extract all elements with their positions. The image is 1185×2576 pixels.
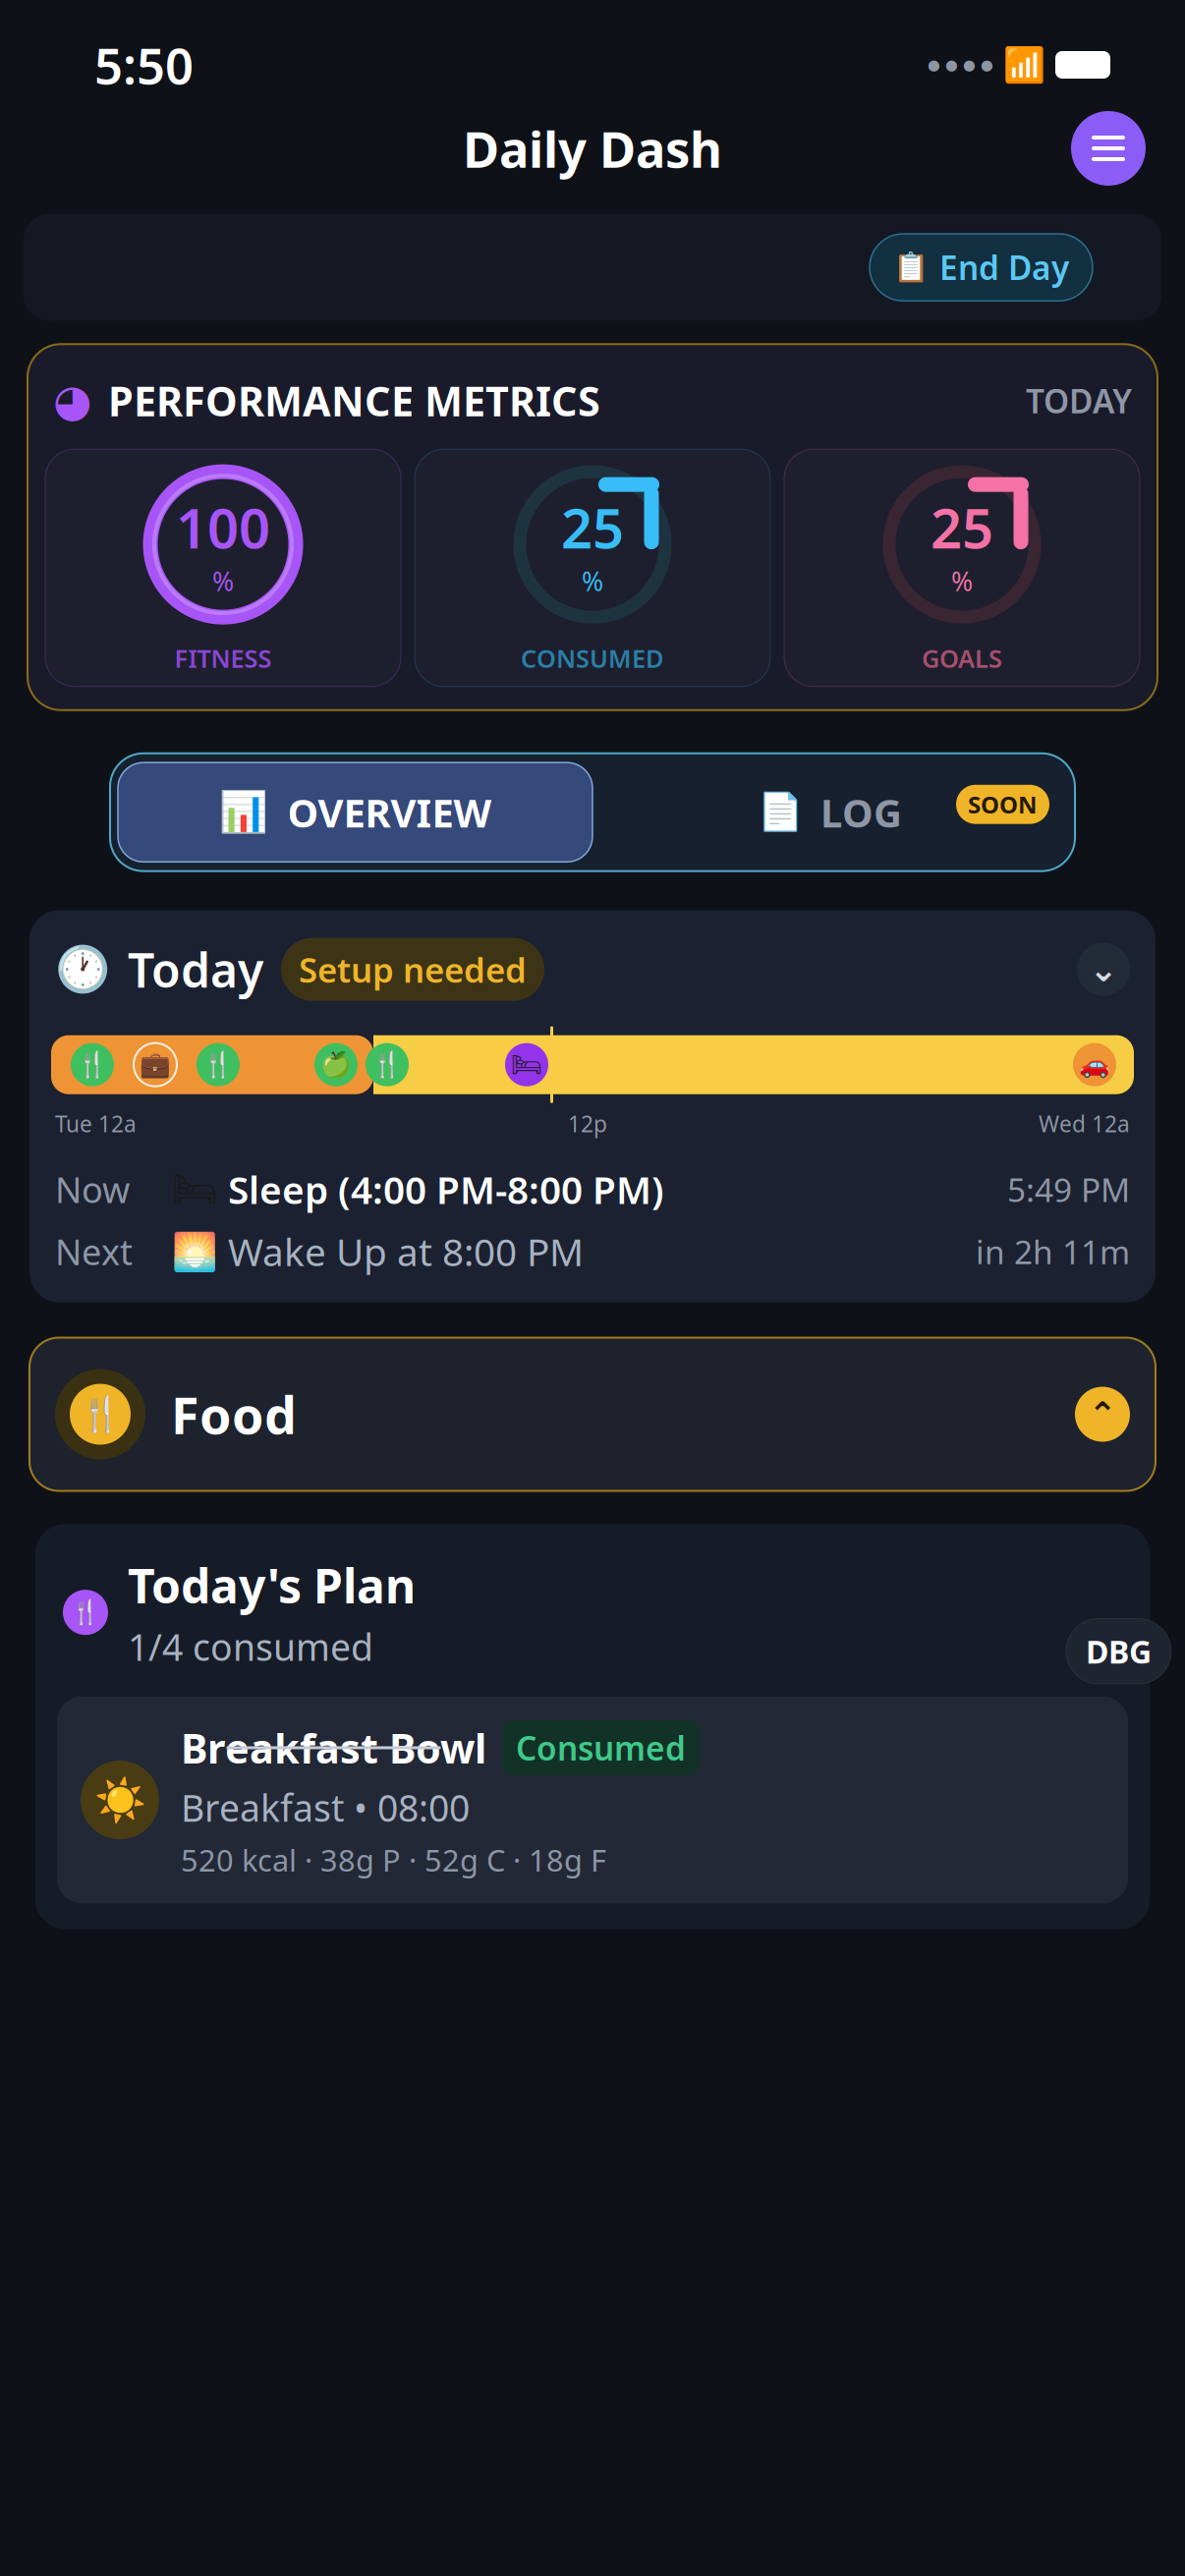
staticText: 5:49 PM xyxy=(1007,1167,1130,1211)
staticText: Food xyxy=(171,1380,297,1448)
staticText: 🚗 xyxy=(1079,1050,1110,1079)
staticText: 🍴 xyxy=(371,1050,403,1079)
button[interactable]: 📋 xyxy=(870,234,1093,301)
staticText: 🌅 xyxy=(172,1231,217,1272)
staticText: CONSUMED xyxy=(521,642,664,675)
staticText: 🍴 xyxy=(77,1050,108,1079)
staticText: 🍴 xyxy=(79,1395,121,1434)
staticText: 🕐 xyxy=(55,944,110,995)
button[interactable]: Collapse xyxy=(1077,943,1130,996)
staticText: 🍴 xyxy=(202,1050,234,1079)
button[interactable]: Menu xyxy=(1061,101,1156,196)
staticText: 🍴 xyxy=(71,1599,100,1626)
staticText: ⌄ xyxy=(1089,950,1118,989)
staticText: Wed 12a xyxy=(1039,1109,1130,1138)
staticText: 520 kcal · 38g P · 52g C · 18g F xyxy=(181,1840,606,1880)
staticText: 100 xyxy=(176,491,270,564)
staticText: Next xyxy=(55,1228,133,1275)
staticText: DBG xyxy=(1086,1630,1152,1672)
staticText: 🛏 xyxy=(171,1168,218,1210)
staticText: ◕ xyxy=(53,375,92,426)
staticText: End Day xyxy=(939,246,1069,289)
staticText: 📋 xyxy=(893,251,930,284)
staticText: TODAY xyxy=(1026,379,1132,422)
staticText: % xyxy=(582,564,603,598)
staticText: Breakfast • 08:00 xyxy=(181,1783,470,1832)
staticText: LOG xyxy=(820,786,902,838)
staticText: FITNESS xyxy=(174,642,272,675)
staticText: 25 xyxy=(561,491,624,564)
staticText: in 2h 11m xyxy=(976,1230,1130,1273)
staticText: Today's Plan xyxy=(128,1554,416,1616)
staticText: ☀️ xyxy=(94,1776,146,1824)
staticText: PERFORMANCE METRICS xyxy=(108,374,600,428)
button[interactable]: 📊 xyxy=(118,763,592,862)
staticText: Daily Dash xyxy=(463,115,722,181)
staticText: Now xyxy=(55,1166,130,1213)
button[interactable]: 🍴 xyxy=(29,1338,1156,1491)
staticText: 5:50 xyxy=(94,32,194,98)
staticText: 📊 xyxy=(219,790,268,835)
staticText: 🛏 xyxy=(511,1050,542,1079)
staticText: 12p xyxy=(568,1109,607,1138)
staticText: Wake Up at 8:00 PM xyxy=(228,1226,584,1277)
staticText: Breakfast Bowl xyxy=(181,1721,486,1775)
staticText: 📄 xyxy=(758,791,803,833)
staticText: Consumed xyxy=(516,1726,686,1770)
staticText: 1/4 consumed xyxy=(128,1622,373,1671)
staticText: OVERVIEW xyxy=(287,786,492,838)
staticText: Today xyxy=(128,938,263,1001)
staticText: SOON xyxy=(968,789,1038,820)
staticText: ● ● ● ● xyxy=(928,57,993,73)
staticText: % xyxy=(951,564,973,598)
staticText: ⌃ xyxy=(1088,1395,1117,1434)
staticText: 25 xyxy=(931,491,993,564)
button[interactable]: 📄 xyxy=(592,761,1067,863)
staticText: GOALS xyxy=(922,642,1002,675)
staticText: Setup needed xyxy=(299,947,527,992)
staticText: Tue 12a xyxy=(55,1109,137,1138)
staticText: % xyxy=(212,564,234,598)
staticText: 💼 xyxy=(140,1050,171,1079)
staticText: 🍏 xyxy=(320,1050,352,1079)
staticText: 📶 xyxy=(1003,45,1045,84)
staticText: Sleep (4:00 PM-8:00 PM) xyxy=(228,1164,664,1214)
